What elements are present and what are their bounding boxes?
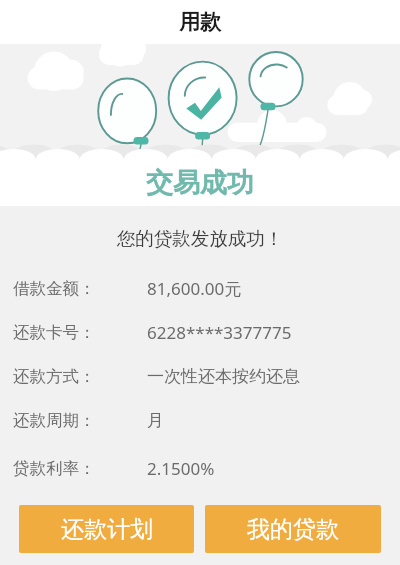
button[interactable]: 借款金额： <box>0 266 400 310</box>
button[interactable]: 贷款利率： <box>0 446 400 490</box>
staticText: 用款 <box>179 9 221 35</box>
staticText: 还款计划 <box>61 515 153 544</box>
button[interactable]: 还款计划 <box>19 505 194 553</box>
staticText: 6228****3377775 <box>147 321 292 344</box>
staticText: 贷款利率： <box>13 458 96 479</box>
staticText: 还款周期： <box>13 410 96 431</box>
staticText: 交易成功 <box>146 166 254 200</box>
staticText: 一次性还本按约还息 <box>147 366 300 387</box>
staticText: 您的贷款发放成功！ <box>0 227 400 250</box>
staticText: 2.1500% <box>147 457 215 480</box>
staticText: 我的贷款 <box>247 515 339 544</box>
button[interactable]: 还款方式： <box>0 354 400 398</box>
staticText: 月 <box>147 410 164 431</box>
staticText: 还款卡号： <box>13 322 96 343</box>
staticText: 81,600.00元 <box>147 277 242 300</box>
staticText: 还款方式： <box>13 366 96 387</box>
button[interactable]: 我的贷款 <box>205 505 381 553</box>
button[interactable]: 还款周期： <box>0 398 400 442</box>
staticText: 借款金额： <box>13 278 96 299</box>
button[interactable]: 还款卡号： <box>0 310 400 354</box>
